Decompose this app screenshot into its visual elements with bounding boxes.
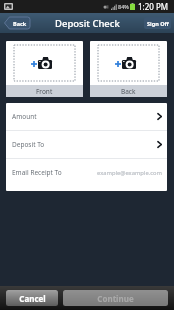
button[interactable]: Deposit To [6,131,167,158]
staticText: Amount [12,112,37,121]
staticText: Continue [97,293,134,304]
staticText: Sign Off [147,20,169,27]
staticText: Cancel [19,293,46,304]
staticText: Deposit Check [55,17,120,30]
button[interactable]: Cancel [6,290,58,306]
button[interactable]: Continue [63,290,168,306]
staticText: 1:20 PM [138,1,169,12]
staticText: Deposit To [12,140,45,149]
other: Screenshot saved [4,3,13,10]
button[interactable]: Sign Off [144,17,171,29]
button[interactable]: Back [4,17,30,29]
button[interactable]: Capture Front of check [6,41,83,97]
button[interactable]: Amount [6,103,167,130]
staticText: 84% [118,3,129,10]
staticText: Email Receipt To [12,168,62,177]
button[interactable]: Email Receipt To [6,159,167,186]
staticText: Back [121,87,136,96]
staticText: Front [36,87,53,96]
staticText: Back [13,20,27,27]
button[interactable]: Capture Back of check [90,41,167,97]
staticText: example@example.com [97,169,162,177]
